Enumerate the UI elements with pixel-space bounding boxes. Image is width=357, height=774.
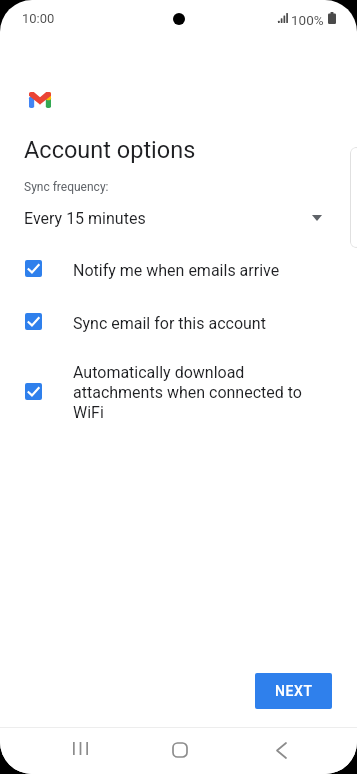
staticText: NEXT — [275, 683, 313, 699]
staticText: Every 15 minutes — [24, 209, 146, 228]
staticText: Automatically download attachments when … — [73, 363, 318, 422]
button[interactable]: Sync email for this account — [0, 302, 357, 345]
button[interactable]: Automatically download attachments when … — [0, 356, 357, 429]
staticText: Sync frequency: — [24, 180, 109, 194]
button[interactable]: Recent apps — [56, 725, 104, 771]
button[interactable]: Home — [156, 727, 204, 773]
staticText: Sync email for this account — [73, 314, 313, 333]
staticText: 10:00 — [22, 11, 55, 26]
staticText: Account options — [24, 136, 196, 164]
staticText: Notify me when emails arrive — [73, 261, 313, 280]
button[interactable]: Every 15 minutes — [0, 202, 357, 234]
staticText: 100% — [291, 12, 324, 28]
button[interactable]: NEXT — [255, 673, 332, 709]
button[interactable]: Notify me when emails arrive — [0, 249, 357, 292]
button[interactable]: Back — [257, 727, 305, 773]
